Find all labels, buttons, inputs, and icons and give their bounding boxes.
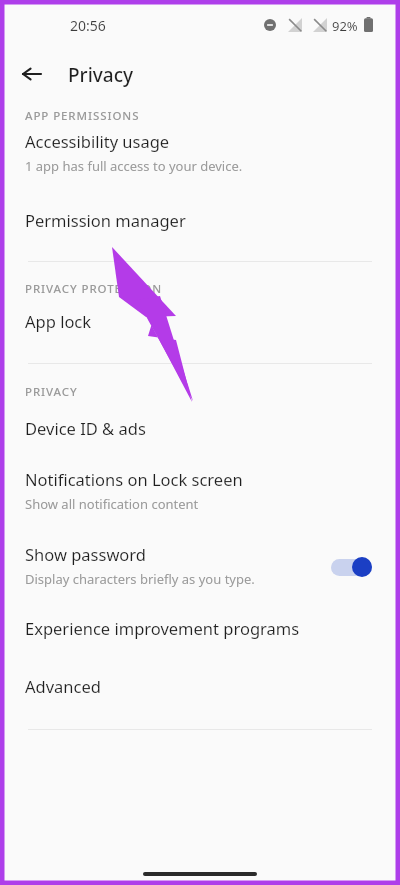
staticText: Privacy bbox=[68, 62, 133, 88]
button[interactable]: Back bbox=[14, 56, 50, 92]
staticText: Device ID & ads bbox=[25, 417, 146, 439]
button[interactable]: Show password bbox=[0, 517, 400, 592]
button[interactable]: App lock bbox=[0, 297, 400, 336]
staticText: Experience improvement programs bbox=[25, 617, 300, 639]
button[interactable]: Accessibility usage bbox=[0, 124, 400, 179]
staticText: App lock bbox=[25, 310, 92, 332]
button[interactable]: Advanced bbox=[0, 643, 400, 701]
staticText: Accessibility usage bbox=[25, 130, 170, 152]
staticText: Display characters briefly as you type. bbox=[25, 570, 255, 588]
button[interactable]: Notifications on Lock screen bbox=[0, 443, 400, 517]
button[interactable]: Permission manager bbox=[0, 179, 400, 235]
button[interactable]: Experience improvement programs bbox=[0, 592, 400, 643]
staticText: Advanced bbox=[25, 675, 101, 697]
staticText: APP PERMISSIONS bbox=[25, 108, 140, 124]
staticText: PRIVACY PROTECTION bbox=[25, 281, 163, 297]
staticText: Show all notification content bbox=[25, 495, 199, 513]
staticText: Show password bbox=[25, 543, 146, 565]
staticText: Permission manager bbox=[25, 209, 186, 231]
staticText: 20:56 bbox=[70, 16, 106, 35]
staticText: 92% bbox=[332, 17, 358, 35]
staticText: PRIVACY bbox=[25, 384, 78, 400]
staticText: Notifications on Lock screen bbox=[25, 468, 243, 490]
button[interactable]: Device ID & ads bbox=[0, 400, 400, 443]
staticText: 1 app has full access to your device. bbox=[25, 157, 243, 175]
